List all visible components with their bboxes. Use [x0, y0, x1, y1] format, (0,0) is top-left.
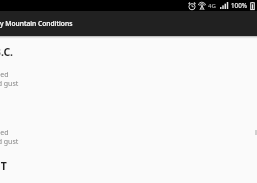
staticText: 4G — [208, 2, 216, 10]
other: Mobile signal full — [220, 2, 229, 9]
staticText: Wind speed — [0, 128, 9, 138]
other: Battery full — [250, 2, 255, 10]
staticText: Wind speed — [0, 70, 9, 80]
staticText: Whistler, B.C. — [0, 45, 14, 59]
button[interactable]: Blackcomb — [0, 103, 257, 159]
staticText: Grouse MT — [0, 159, 7, 173]
button[interactable]: Grouse MT — [0, 159, 257, 183]
button[interactable]: Whistler, B.C. — [0, 45, 257, 101]
staticText: Wind gust — [0, 79, 19, 89]
other: Wi-Fi connected — [198, 2, 206, 10]
other: Alarm set — [188, 2, 196, 10]
staticText: 100% — [231, 1, 248, 10]
staticText: y Mountain Conditions — [0, 19, 73, 28]
staticText: Wind gust — [0, 137, 19, 147]
